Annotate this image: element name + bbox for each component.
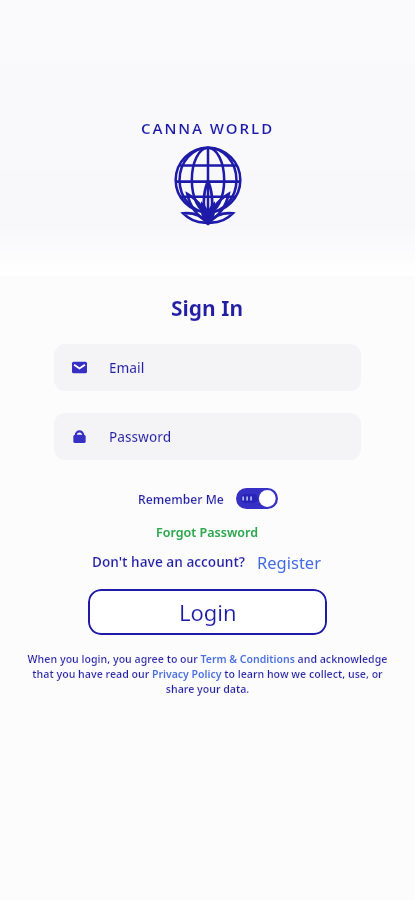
staticText: Sign In xyxy=(171,294,244,323)
button[interactable]: Login xyxy=(88,589,327,635)
staticText: Login xyxy=(179,597,237,627)
staticText: Password xyxy=(109,428,172,446)
staticText: When you login, you agree to our Term & … xyxy=(22,652,393,696)
button[interactable]: Forgot Password xyxy=(148,522,267,543)
button[interactable]: Email xyxy=(54,344,361,391)
staticText: Forgot Password xyxy=(156,524,259,541)
button[interactable]: Remember Me toggle, on xyxy=(236,488,278,509)
button[interactable]: Password xyxy=(54,413,361,460)
staticText: Remember Me xyxy=(138,491,224,507)
staticText: Register xyxy=(257,551,321,573)
staticText: Email xyxy=(109,359,145,377)
button[interactable]: Register xyxy=(255,549,323,575)
staticText: Don't have an account? xyxy=(92,553,246,571)
staticText: CANNA WORLD xyxy=(141,118,275,138)
